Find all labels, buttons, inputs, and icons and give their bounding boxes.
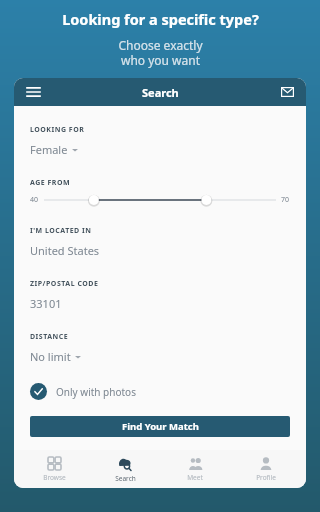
staticText: No limit <box>30 349 71 364</box>
button[interactable]: Age range <box>44 192 276 208</box>
staticText: Browse <box>43 473 66 482</box>
staticText: LOOKING FOR <box>30 125 85 135</box>
button[interactable]: Browse <box>24 450 84 488</box>
staticText: I'M LOCATED IN <box>30 226 92 236</box>
button[interactable]: Search <box>95 450 155 488</box>
staticText: Profile <box>256 473 276 482</box>
button[interactable]: 33101 <box>30 296 62 311</box>
staticText: 40 <box>30 195 39 205</box>
staticText: Find Your Match <box>122 420 199 433</box>
button[interactable]: Menu <box>22 81 44 103</box>
button[interactable]: Messages <box>276 81 298 103</box>
staticText: Female <box>30 142 68 157</box>
staticText: Only with photos <box>56 385 136 399</box>
button[interactable]: Profile <box>236 450 296 488</box>
button[interactable]: No limit <box>30 349 81 364</box>
staticText: Choose exactly who you want <box>118 37 203 68</box>
staticText: Search <box>115 474 136 483</box>
button[interactable]: Female <box>30 142 78 157</box>
staticText: Search <box>142 85 179 100</box>
button[interactable]: Only with photos <box>30 383 136 400</box>
button[interactable]: Find Your Match <box>30 416 290 437</box>
staticText: Looking for a specific type? <box>62 9 259 29</box>
button[interactable]: Meet <box>165 450 225 488</box>
staticText: DISTANCE <box>30 332 69 342</box>
staticText: ZIP/POSTAL CODE <box>30 279 99 289</box>
button[interactable]: United States <box>30 243 100 258</box>
staticText: Meet <box>187 473 203 482</box>
staticText: AGE FROM <box>30 178 71 188</box>
staticText: 70 <box>281 195 290 205</box>
